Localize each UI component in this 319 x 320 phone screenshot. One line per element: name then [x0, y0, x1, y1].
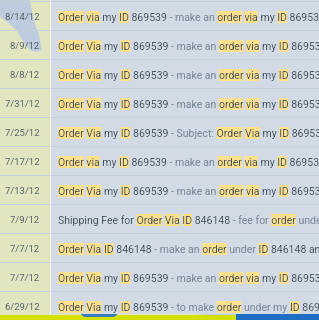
button[interactable]: 8/8/12	[0, 60, 319, 89]
staticText: Shipping Fee for Order Via ID 846148 - f…	[58, 214, 319, 226]
staticText: 6/29/12	[5, 301, 40, 312]
staticText: 8/9/12	[10, 40, 40, 51]
staticText: 7/13/12	[5, 185, 40, 196]
button[interactable]: 7/17/12	[0, 147, 319, 176]
staticText: 7/31/12	[5, 98, 40, 109]
button[interactable]: 7/31/12	[0, 89, 319, 118]
staticText: 8/8/12	[10, 69, 40, 80]
button[interactable]: 7/7/12	[0, 263, 319, 292]
staticText: Order Via my ID 869539 - to make order u…	[58, 301, 319, 313]
staticText: 7/25/12	[5, 127, 40, 138]
staticText: Order Via ID 846148 - make an order unde…	[58, 243, 319, 255]
staticText: Order Via my ID 869539 - Subject: Order …	[58, 127, 319, 139]
button[interactable]: 7/25/12	[0, 118, 319, 147]
staticText: 7/7/12	[10, 243, 40, 254]
button[interactable]: 7/9/12	[0, 205, 319, 234]
staticText: Order via my ID 869539 - make an order v…	[58, 156, 319, 168]
staticText: Order Via my ID 869539 - make an order v…	[58, 98, 319, 110]
staticText: 7/17/12	[5, 156, 40, 167]
staticText: Order Via my ID 869539 - make an order v…	[58, 69, 319, 81]
staticText: 7/7/12	[10, 272, 40, 283]
button[interactable]: 7/7/12	[0, 234, 319, 263]
staticText: Order via my ID 869539 - make an order v…	[58, 11, 319, 23]
staticText: Order Via my ID 869539 - make an order v…	[58, 40, 319, 52]
button[interactable]: 8/9/12	[0, 31, 319, 60]
staticText: Order Via my ID 869539 - make an order v…	[58, 272, 319, 284]
staticText: 8/14/12	[5, 11, 40, 22]
button[interactable]: 8/14/12	[0, 2, 319, 31]
button[interactable]: 6/29/12	[0, 292, 319, 320]
staticText: 7/9/12	[10, 214, 40, 225]
button[interactable]: 7/13/12	[0, 176, 319, 205]
staticText: Order Via my ID 869539 - make an order v…	[58, 185, 319, 197]
